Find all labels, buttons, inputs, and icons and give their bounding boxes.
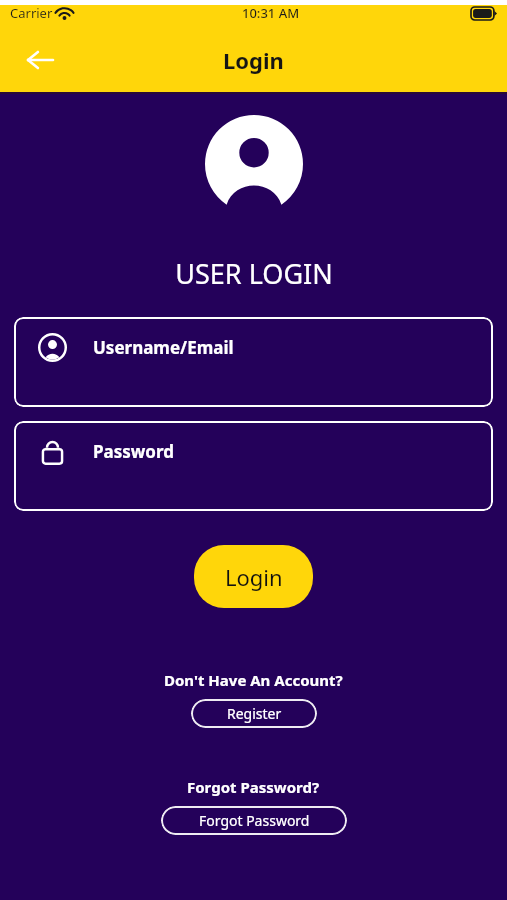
staticText: 10:31 AM xyxy=(242,4,300,22)
staticText: Register xyxy=(227,704,282,723)
button[interactable]: Forgot Password xyxy=(161,806,347,835)
button[interactable]: Username/Email xyxy=(14,317,493,407)
button[interactable]: Login xyxy=(194,545,313,608)
button[interactable]: Password xyxy=(14,421,493,511)
staticText: Login xyxy=(223,45,284,75)
staticText: Forgot Password? xyxy=(187,777,320,797)
button[interactable]: Register xyxy=(191,699,317,728)
staticText: USER LOGIN xyxy=(175,255,333,292)
staticText: Password xyxy=(93,440,174,463)
staticText: Login xyxy=(225,562,283,592)
button[interactable]: Back xyxy=(18,38,62,82)
staticText: Forgot Password xyxy=(199,811,310,830)
staticText: Username/Email xyxy=(93,336,234,359)
staticText: Don't Have An Account? xyxy=(164,670,343,690)
staticText: Carrier xyxy=(10,4,53,22)
